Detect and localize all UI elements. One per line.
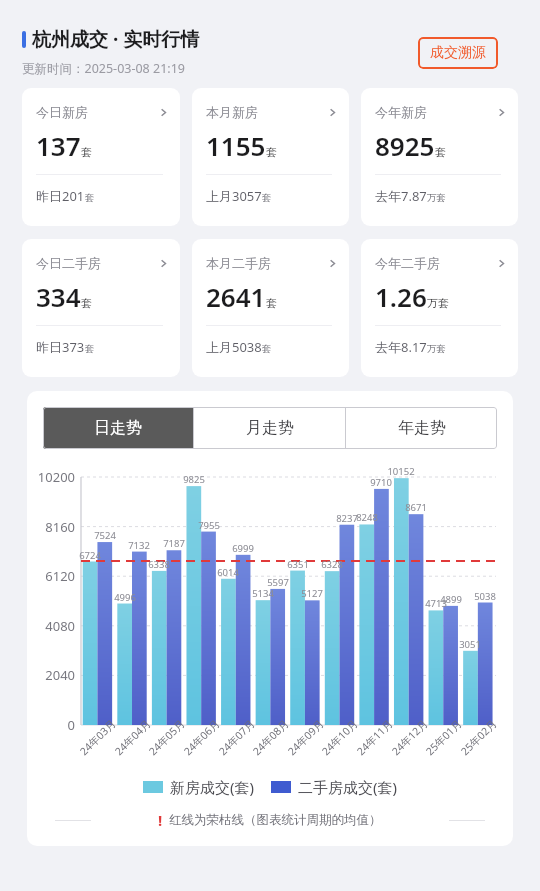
other: 详情 [496, 258, 507, 269]
button[interactable]: 日走势 [43, 407, 193, 449]
staticText: 25年01月 [423, 716, 465, 758]
staticText: 8925 [375, 128, 435, 163]
staticText: 6999 [227, 542, 259, 555]
staticText: 334 [36, 279, 81, 314]
staticText: 本月新房 [206, 104, 258, 120]
other: 详情 [327, 107, 338, 118]
staticText: 杭州成交 · 实时行情 [32, 26, 200, 52]
staticText: 套 [266, 296, 277, 310]
staticText: 2641 [206, 279, 266, 314]
staticText: 2040 [27, 666, 75, 684]
staticText: 成交溯源 [430, 44, 486, 62]
staticText: 6351 [282, 558, 314, 571]
staticText: 万套 [427, 192, 446, 204]
staticText: 7132 [123, 539, 155, 552]
staticText: 24年03月 [77, 716, 119, 758]
staticText: 二手房成交(套) [298, 777, 398, 797]
staticText: 4996 [109, 591, 141, 604]
staticText: 本月二手房 [206, 255, 271, 271]
staticText: 9710 [365, 476, 397, 489]
button[interactable]: 成交溯源 [418, 37, 498, 69]
staticText: 套 [266, 145, 277, 159]
staticText: 昨日373 [36, 338, 85, 356]
staticText: 24年09月 [285, 716, 327, 758]
staticText: 5134 [247, 587, 279, 600]
staticText: 10200 [27, 468, 75, 486]
staticText: 套 [262, 192, 272, 204]
staticText: 5038 [469, 590, 501, 603]
staticText: 去年8.17 [375, 338, 427, 356]
staticText: 7187 [158, 537, 190, 550]
staticText: 套 [85, 192, 95, 204]
staticText: 137 [36, 128, 81, 163]
staticText: 6014 [212, 566, 244, 579]
staticText: 万套 [427, 343, 446, 355]
other: 详情 [496, 107, 507, 118]
staticText: 24年08月 [250, 716, 292, 758]
staticText: 套 [435, 145, 446, 159]
staticText: 6724 [74, 549, 106, 562]
staticText: 25年02月 [458, 716, 500, 758]
staticText: 24年11月 [354, 716, 396, 758]
staticText: 月走势 [246, 418, 294, 438]
staticText: 万套 [427, 296, 449, 310]
button[interactable]: 今日二手房 [22, 239, 180, 377]
staticText: 上月5038 [206, 338, 262, 356]
staticText: 4080 [27, 617, 75, 635]
button[interactable]: 今年二手房 [361, 239, 518, 377]
staticText: 8248 [351, 511, 383, 524]
staticText: 日走势 [94, 418, 142, 438]
button[interactable]: 今年新房 [361, 88, 518, 226]
staticText: 6328 [316, 558, 348, 571]
staticText: 6120 [27, 567, 75, 585]
staticText: 8237 [331, 512, 363, 525]
staticText: 套 [262, 343, 272, 355]
staticText: 去年7.87 [375, 187, 427, 205]
staticText: 6338 [143, 558, 175, 571]
staticText: 上月3057 [206, 187, 262, 205]
staticText: 套 [81, 296, 92, 310]
staticText: 24年06月 [181, 716, 223, 758]
staticText: 5127 [296, 587, 328, 600]
other: 详情 [158, 107, 169, 118]
staticText: 5597 [262, 576, 294, 589]
staticText: 1.26 [375, 279, 427, 314]
staticText: 1155 [206, 128, 266, 163]
staticText: 新房成交(套) [170, 777, 255, 797]
staticText: 套 [85, 343, 95, 355]
staticText: 昨日201 [36, 187, 85, 205]
staticText: 24年04月 [112, 716, 154, 758]
staticText: 套 [81, 145, 92, 159]
button[interactable]: 年走势 [346, 407, 497, 449]
staticText: 8671 [400, 501, 432, 514]
staticText: 24年12月 [389, 716, 431, 758]
other: 详情 [158, 258, 169, 269]
staticText: 今年二手房 [375, 255, 440, 271]
staticText: 4713 [420, 597, 452, 610]
staticText: 7955 [193, 519, 225, 532]
staticText: 10152 [385, 465, 417, 478]
staticText: 更新时间：2025-03-08 21:19 [22, 60, 185, 77]
staticText: 3051 [454, 638, 486, 651]
staticText: 24年05月 [146, 716, 188, 758]
staticText: 0 [27, 716, 75, 734]
staticText: 今年新房 [375, 104, 427, 120]
staticText: 4899 [435, 593, 467, 606]
staticText: 年走势 [398, 418, 446, 438]
other: 详情 [327, 258, 338, 269]
staticText: 8160 [27, 518, 75, 536]
staticText: 今日新房 [36, 104, 88, 120]
staticText: 今日二手房 [36, 255, 101, 271]
staticText: 9825 [178, 473, 210, 486]
button[interactable]: 本月二手房 [192, 239, 349, 377]
staticText: 24年10月 [319, 716, 361, 758]
staticText: 24年07月 [216, 716, 258, 758]
staticText: ! [158, 810, 163, 830]
button[interactable]: 本月新房 [192, 88, 349, 226]
button[interactable]: 月走势 [194, 407, 345, 449]
button[interactable]: 今日新房 [22, 88, 180, 226]
staticText: 红线为荣枯线（图表统计周期的均值） [169, 812, 382, 828]
staticText: 7524 [89, 529, 121, 542]
